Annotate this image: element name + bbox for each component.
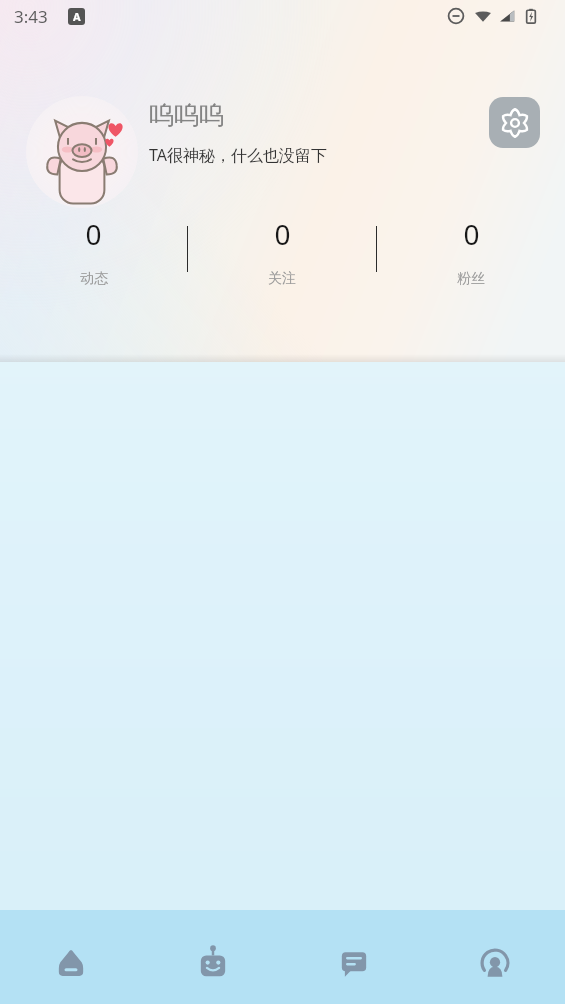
button[interactable]: 0	[377, 215, 565, 288]
staticText: 动态	[80, 270, 108, 288]
button[interactable]: Home	[0, 910, 142, 1004]
staticText: TA很神秘，什么也没留下	[149, 144, 328, 166]
staticText: 呜呜呜	[149, 100, 224, 131]
button[interactable]: 0	[0, 215, 187, 288]
staticText: A	[73, 9, 81, 24]
button[interactable]: Robot	[142, 910, 283, 1004]
button[interactable]: Profile	[424, 910, 565, 1004]
staticText: 关注	[268, 270, 296, 288]
button[interactable]: Avatar	[26, 96, 138, 208]
staticText: 0	[463, 215, 480, 253]
staticText: 0	[85, 215, 102, 253]
button[interactable]: 0	[188, 215, 376, 288]
staticText: 3:43	[14, 5, 48, 28]
staticText: 粉丝	[457, 270, 485, 288]
button[interactable]: Settings	[489, 97, 540, 148]
button[interactable]: Messages	[283, 910, 424, 1004]
staticText: 0	[274, 215, 291, 253]
